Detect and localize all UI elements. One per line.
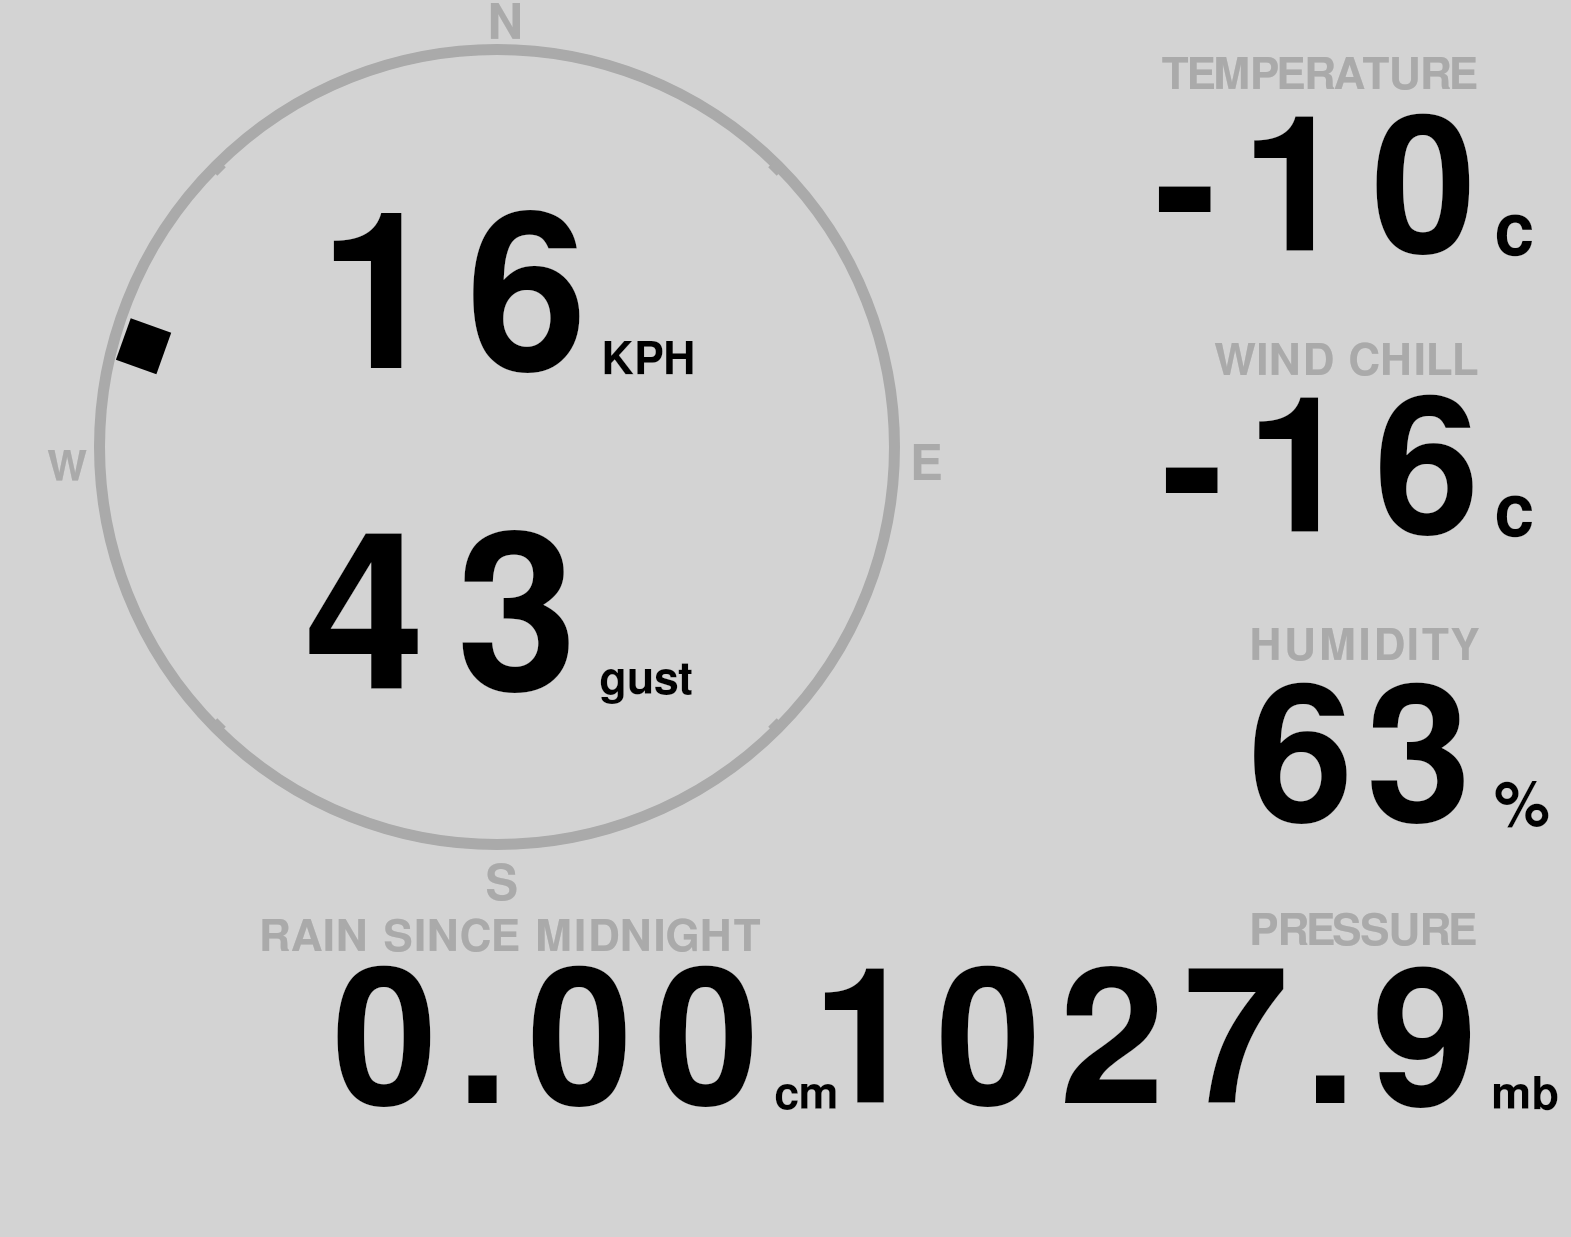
staticText: 43 bbox=[304, 514, 609, 732]
staticText: N bbox=[487, 0, 524, 49]
button[interactable]: Temperature -10 C bbox=[1120, 40, 1560, 270]
staticText: c bbox=[1494, 196, 1535, 268]
button[interactable]: Pressure 1027.9 mb bbox=[870, 900, 1570, 1130]
staticText: PRESSURE bbox=[1249, 910, 1476, 954]
staticText: WIND CHILL bbox=[1214, 340, 1480, 384]
staticText: W bbox=[47, 447, 88, 489]
staticText: TEMPERATURE bbox=[1161, 54, 1477, 98]
staticText: -16 bbox=[1161, 380, 1502, 570]
button[interactable]: Wind direction compass, 16 KPH, gusting … bbox=[60, 10, 940, 890]
button[interactable]: Rain since midnight 0.00 cm bbox=[240, 900, 860, 1130]
staticText: % bbox=[1494, 776, 1551, 839]
staticText: 1027.9 bbox=[812, 951, 1496, 1141]
staticText: 16 bbox=[319, 194, 614, 412]
staticText: 0.00 bbox=[332, 951, 781, 1141]
staticText: cm bbox=[774, 1073, 839, 1118]
staticText: -10 bbox=[1154, 99, 1501, 289]
staticText: HUMIDITY bbox=[1249, 625, 1482, 669]
staticText: gust bbox=[599, 658, 694, 703]
staticText: 63 bbox=[1248, 668, 1484, 858]
button[interactable]: Wind chill -16 C bbox=[1120, 320, 1560, 550]
staticText: KPH bbox=[601, 338, 697, 383]
staticText: mb bbox=[1491, 1073, 1560, 1118]
staticText: c bbox=[1494, 477, 1535, 549]
staticText: E bbox=[910, 441, 943, 490]
button[interactable]: Humidity 63 % bbox=[1120, 605, 1560, 835]
staticText: RAIN SINCE MIDNIGHT bbox=[259, 916, 763, 960]
staticText: S bbox=[485, 861, 519, 910]
